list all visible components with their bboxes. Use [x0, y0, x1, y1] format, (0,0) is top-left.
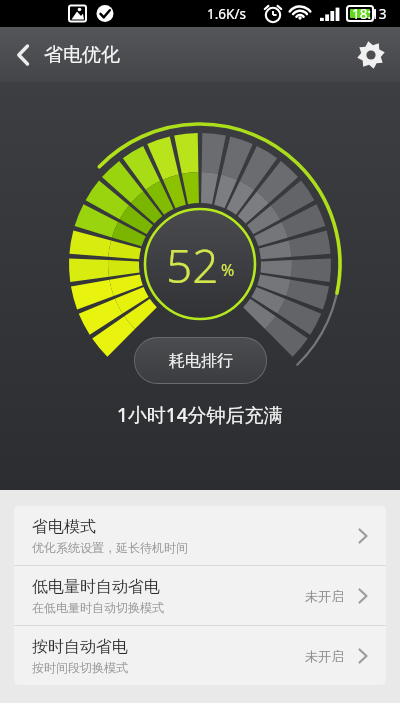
button[interactable]: Back	[0, 27, 46, 82]
staticText: 省电模式	[32, 517, 96, 537]
staticText: 未开启	[305, 588, 344, 604]
staticText: 耗电排行	[169, 351, 233, 371]
button[interactable]: 耗电排行	[134, 337, 267, 384]
staticText: 52	[166, 234, 219, 297]
staticText: 按时自动省电	[32, 637, 128, 657]
staticText: 低电量时自动省电	[32, 577, 160, 597]
staticText: 按时间段切换模式	[32, 660, 128, 675]
button[interactable]: 低电量时自动省电	[14, 566, 386, 625]
staticText: 省电优化	[44, 43, 120, 67]
staticText: 在低电量时自动切换模式	[32, 600, 164, 615]
staticText: %	[221, 259, 235, 281]
staticText: 未开启	[305, 648, 344, 664]
button[interactable]: Settings	[342, 27, 400, 82]
staticText: 18:13	[352, 5, 387, 23]
button[interactable]: 省电模式	[14, 506, 386, 565]
staticText: 1.6K/s	[207, 5, 246, 23]
staticText: 优化系统设置，延长待机时间	[32, 540, 188, 555]
staticText: 1小时14分钟后充满	[117, 402, 283, 428]
button[interactable]: 按时自动省电	[14, 626, 386, 685]
